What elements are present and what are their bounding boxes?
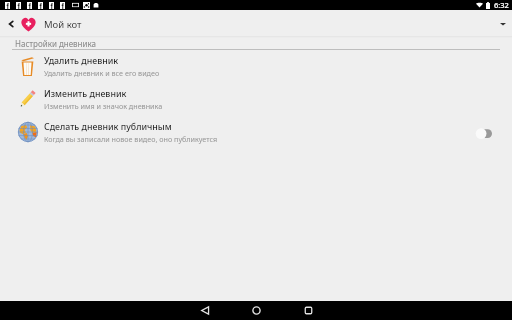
button[interactable]: Изменить дневник (0, 83, 512, 116)
staticText: Когда вы записали новое видео, оно публи… (44, 134, 218, 144)
button[interactable]: Сделать дневник публичным (0, 116, 512, 149)
staticText: Удалить дневник и все его видео (44, 68, 160, 78)
button[interactable]: Back (2, 17, 18, 33)
staticText: Сделать дневник публичным (44, 121, 172, 133)
staticText: Настройки дневника (15, 38, 97, 49)
staticText: Изменить дневник (44, 88, 127, 100)
staticText: Удалить дневник (44, 55, 119, 67)
button[interactable]: Удалить дневник (0, 50, 512, 83)
staticText: 6:32 (494, 0, 509, 10)
button[interactable]: Toggle public diary (475, 126, 493, 140)
button[interactable]: More options (496, 17, 510, 31)
staticText: Мой кот (44, 18, 82, 31)
staticText: Изменить имя и значок дневника (44, 101, 163, 111)
button[interactable]: Home (229, 301, 283, 320)
button[interactable]: Back (175, 301, 229, 320)
button[interactable]: Recents (283, 301, 337, 320)
